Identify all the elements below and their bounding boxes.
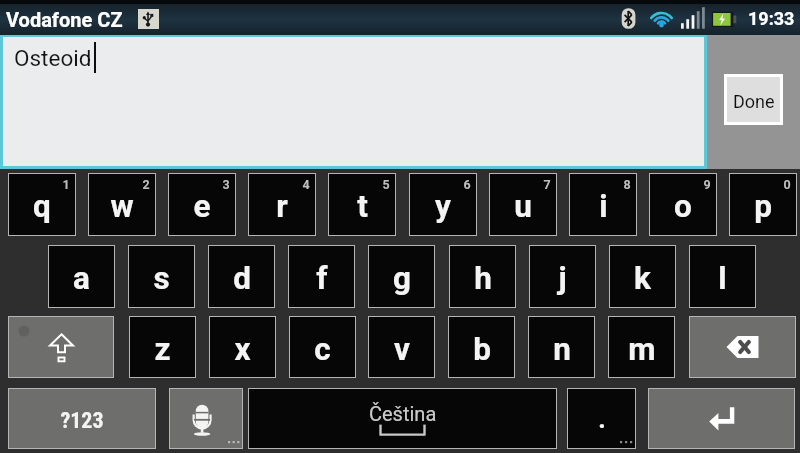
button[interactable]: Backspace bbox=[689, 316, 796, 378]
button[interactable]: Voice input bbox=[169, 388, 243, 449]
staticText: g bbox=[393, 260, 411, 297]
staticText: a bbox=[73, 260, 90, 297]
staticText: q bbox=[33, 188, 51, 225]
staticText: r bbox=[276, 188, 288, 225]
staticText: f bbox=[316, 260, 328, 297]
staticText: 9 bbox=[703, 177, 711, 192]
staticText: ?123 bbox=[60, 408, 104, 434]
staticText: u bbox=[514, 188, 532, 225]
staticText: 1 bbox=[62, 177, 70, 192]
button[interactable]: f bbox=[288, 245, 355, 308]
button[interactable]: Done bbox=[727, 77, 780, 122]
staticText: o bbox=[674, 188, 692, 225]
button[interactable]: Čeština bbox=[248, 388, 557, 449]
staticText: k bbox=[634, 260, 651, 297]
staticText: m bbox=[628, 331, 656, 368]
staticText: 2 bbox=[142, 177, 150, 192]
staticText: e bbox=[193, 188, 211, 225]
button[interactable]: x bbox=[209, 316, 276, 378]
staticText: w bbox=[110, 188, 134, 225]
button[interactable]: h bbox=[449, 245, 516, 308]
button[interactable]: b bbox=[448, 316, 515, 378]
staticText: b bbox=[473, 331, 491, 368]
staticText: p bbox=[754, 188, 772, 225]
button[interactable]: j bbox=[529, 245, 596, 308]
button[interactable]: k bbox=[609, 245, 676, 308]
button[interactable]: n bbox=[528, 316, 595, 378]
button[interactable]: z bbox=[129, 316, 196, 378]
staticText: d bbox=[233, 260, 251, 297]
staticText: 7 bbox=[543, 177, 551, 192]
button[interactable]: m bbox=[608, 316, 675, 378]
button[interactable]: i bbox=[569, 173, 637, 236]
staticText: 5 bbox=[382, 177, 390, 192]
button[interactable]: c bbox=[289, 316, 356, 378]
button[interactable]: d bbox=[208, 245, 275, 308]
staticText: n bbox=[553, 331, 571, 368]
button[interactable]: w bbox=[88, 173, 156, 236]
button[interactable]: p bbox=[729, 173, 797, 236]
staticText: c bbox=[314, 331, 331, 368]
staticText: z bbox=[154, 331, 171, 368]
staticText: l bbox=[718, 260, 727, 297]
button[interactable]: q bbox=[8, 173, 76, 236]
staticText: y bbox=[435, 188, 451, 225]
button[interactable]: ?123 bbox=[8, 388, 156, 449]
staticText: Vodafone CZ bbox=[6, 8, 123, 31]
button[interactable]: r bbox=[248, 173, 316, 236]
staticText: t bbox=[357, 188, 368, 225]
staticText: Osteoid bbox=[14, 45, 92, 71]
staticText: 8 bbox=[623, 177, 631, 192]
staticText: 3 bbox=[222, 177, 230, 192]
button[interactable]: l bbox=[689, 245, 756, 308]
staticText: j bbox=[558, 260, 567, 297]
staticText: 4 bbox=[302, 177, 310, 192]
staticText: 19:33 bbox=[748, 8, 795, 29]
staticText: v bbox=[394, 331, 410, 368]
staticText: i bbox=[599, 188, 608, 225]
staticText: 6 bbox=[463, 177, 471, 192]
button[interactable]: u bbox=[489, 173, 557, 236]
staticText: Čeština bbox=[369, 402, 437, 425]
button[interactable]: t bbox=[328, 173, 396, 236]
staticText: Done bbox=[733, 91, 775, 112]
button[interactable]: Enter bbox=[648, 388, 795, 449]
button[interactable]: Shift bbox=[8, 316, 114, 378]
button[interactable]: v bbox=[368, 316, 435, 378]
staticText: s bbox=[153, 260, 170, 297]
button[interactable]: g bbox=[368, 245, 435, 308]
staticText: x bbox=[234, 331, 251, 368]
button[interactable]: e bbox=[168, 173, 236, 236]
button[interactable]: . bbox=[567, 388, 636, 449]
button[interactable]: o bbox=[649, 173, 717, 236]
staticText: h bbox=[474, 260, 492, 297]
staticText: 0 bbox=[783, 177, 791, 192]
button[interactable]: s bbox=[128, 245, 195, 308]
button[interactable]: a bbox=[48, 245, 115, 308]
button[interactable]: y bbox=[409, 173, 477, 236]
staticText: . bbox=[598, 404, 606, 434]
